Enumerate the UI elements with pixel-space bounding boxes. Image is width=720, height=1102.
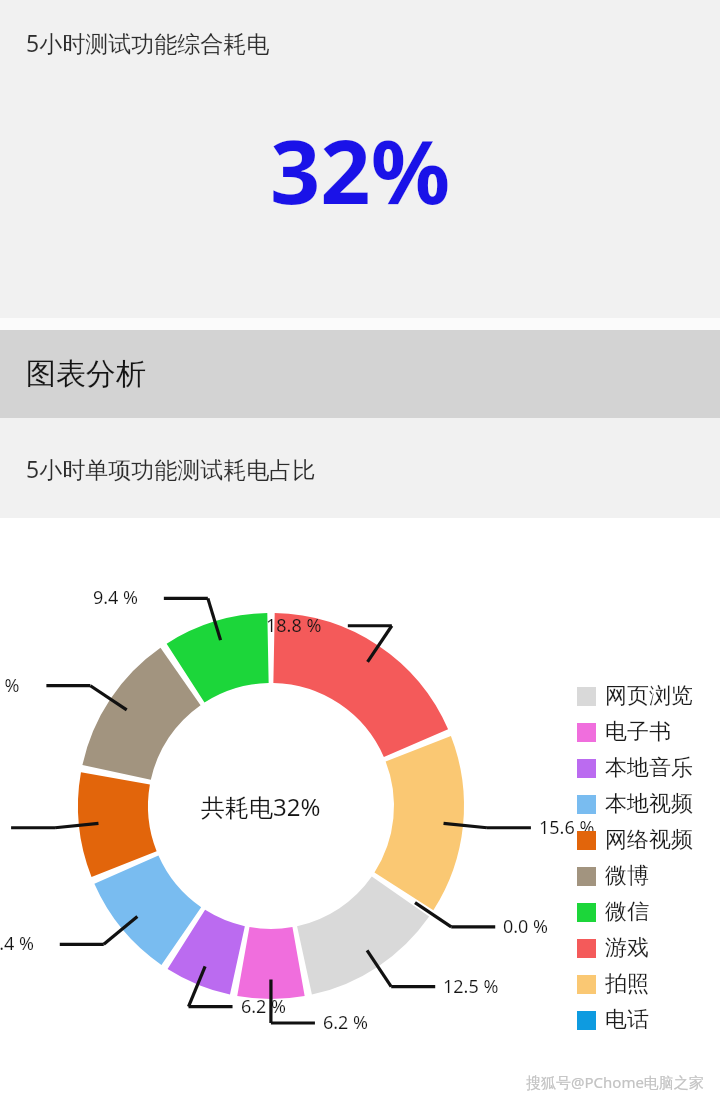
staticText: 12.5 %: [0, 673, 20, 698]
staticText: 电话: [605, 1006, 649, 1034]
button[interactable]: 微信: [577, 894, 649, 930]
button[interactable]: 5小时测试功能综合耗电: [0, 0, 720, 318]
staticText: 6.2 %: [241, 994, 287, 1019]
staticText: 9.4 %: [93, 585, 139, 610]
staticText: 搜狐号@PChome电脑之家: [526, 1072, 704, 1092]
staticText: 15.6 %: [539, 815, 595, 840]
staticText: 网页浏览: [605, 682, 693, 710]
staticText: 32%: [270, 110, 451, 230]
button[interactable]: 本地视频: [577, 786, 693, 822]
button[interactable]: 图表分析: [0, 330, 720, 418]
staticText: 0.0 %: [503, 914, 549, 939]
staticText: 微信: [605, 898, 649, 926]
staticText: 拍照: [605, 970, 649, 998]
button[interactable]: 拍照: [577, 966, 649, 1002]
staticText: 12.5 %: [443, 974, 499, 999]
button[interactable]: 网页浏览: [577, 678, 693, 714]
staticText: 18.8 %: [266, 613, 322, 638]
staticText: 5小时测试功能综合耗电: [26, 27, 270, 58]
staticText: 5小时单项功能测试耗电占比: [26, 453, 316, 484]
staticText: 本地视频: [605, 790, 693, 818]
button[interactable]: 网络视频: [577, 822, 693, 858]
staticText: 游戏: [605, 934, 649, 962]
button[interactable]: 游戏: [577, 930, 649, 966]
button[interactable]: 电子书: [577, 714, 671, 750]
staticText: 图表分析: [26, 355, 146, 393]
button[interactable]: 本地音乐: [577, 750, 693, 786]
button[interactable]: 5小时单项功能测试耗电占比: [0, 418, 720, 518]
staticText: 本地音乐: [605, 754, 693, 782]
button[interactable]: 电话: [577, 1002, 649, 1038]
staticText: 6.2 %: [323, 1010, 369, 1035]
staticText: 微博: [605, 862, 649, 890]
staticText: 电子书: [605, 718, 671, 746]
staticText: 9.4 %: [0, 931, 35, 956]
button[interactable]: 微博: [577, 858, 649, 894]
staticText: 网络视频: [605, 826, 693, 854]
staticText: 共耗电32%: [201, 790, 321, 823]
